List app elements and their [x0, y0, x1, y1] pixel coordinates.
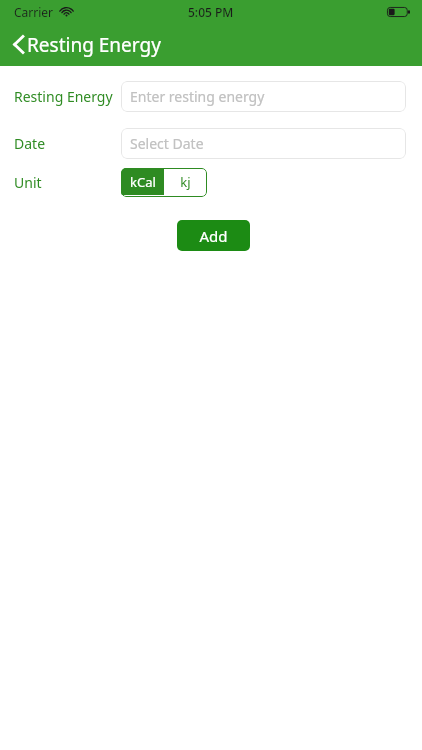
- button[interactable]: kCal: [121, 168, 164, 195]
- staticText: Enter resting energy: [130, 87, 265, 106]
- staticText: Carrier: [14, 4, 54, 20]
- staticText: kj: [180, 173, 191, 191]
- staticText: Add: [199, 226, 228, 246]
- button[interactable]: Back: [0, 31, 27, 58]
- button[interactable]: Select Date: [121, 128, 406, 159]
- button[interactable]: kj: [164, 168, 207, 195]
- staticText: Unit: [14, 173, 42, 192]
- staticText: Resting Energy: [27, 32, 161, 58]
- staticText: 5:05 PM: [188, 4, 234, 20]
- staticText: Date: [14, 134, 46, 153]
- staticText: Resting Energy: [14, 87, 113, 106]
- staticText: Select Date: [130, 134, 204, 153]
- staticText: kCal: [130, 173, 156, 191]
- button[interactable]: Add: [177, 220, 250, 251]
- button[interactable]: Enter resting energy: [121, 81, 406, 112]
